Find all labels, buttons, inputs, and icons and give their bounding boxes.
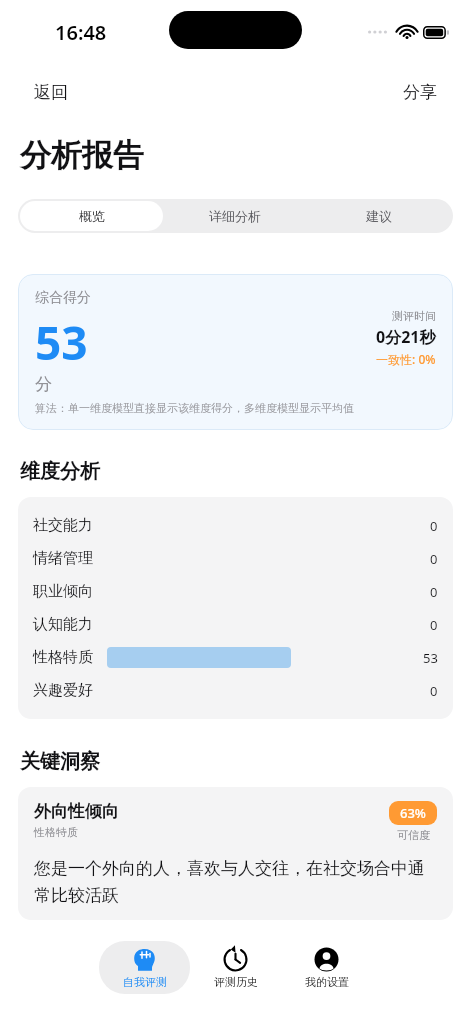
button[interactable]: 自我评测 — [99, 941, 190, 994]
button[interactable]: 详细分析 — [163, 201, 307, 231]
staticText: 一致性: 0% — [376, 351, 436, 367]
staticText: 可信度 — [397, 828, 430, 842]
button[interactable]: 性格特质 — [33, 641, 438, 674]
staticText: 16:48 — [55, 19, 107, 46]
staticText: 评测历史 — [214, 975, 258, 989]
button[interactable]: 概览 — [20, 201, 163, 231]
staticText: 情绪管理 — [33, 549, 93, 568]
staticText: 您是一个外向的人，喜欢与人交往，在社交场合中通常比较活跃 — [34, 858, 437, 906]
button[interactable]: 分享 — [389, 69, 451, 115]
staticText: 概览 — [79, 208, 105, 224]
staticText: 职业倾向 — [33, 582, 93, 601]
staticText: 0 — [430, 550, 438, 568]
staticText: 0分21秒 — [376, 326, 436, 348]
staticText: 性格特质 — [34, 825, 78, 839]
staticText: 0 — [430, 517, 438, 535]
staticText: 关键洞察 — [20, 749, 100, 774]
staticText: 性格特质 — [33, 648, 93, 667]
button[interactable]: 认知能力 — [33, 608, 438, 641]
staticText: 分析报告 — [20, 136, 144, 175]
staticText: 综合得分 — [35, 289, 91, 307]
button[interactable]: 情绪管理 — [33, 542, 438, 575]
staticText: 53 — [35, 311, 88, 374]
button[interactable]: 评测历史 — [190, 941, 281, 994]
staticText: 53 — [423, 649, 438, 667]
button[interactable]: 外向性倾向 — [18, 787, 453, 920]
staticText: 测评时间 — [392, 309, 436, 323]
staticText: 认知能力 — [33, 615, 93, 634]
staticText: 算法：单一维度模型直接显示该维度得分，多维度模型显示平均值 — [35, 401, 356, 415]
other: 自我评测 — [132, 947, 157, 972]
staticText: 维度分析 — [20, 459, 100, 484]
button[interactable]: 返回 — [20, 69, 82, 115]
staticText: 分享 — [403, 82, 437, 103]
staticText: 0 — [430, 682, 438, 700]
button[interactable]: 综合得分 — [18, 274, 453, 430]
button[interactable]: 我的设置 — [281, 941, 372, 994]
staticText: 社交能力 — [33, 516, 93, 535]
staticText: 分 — [35, 374, 52, 395]
staticText: 详细分析 — [209, 208, 261, 224]
button[interactable]: 兴趣爱好 — [33, 674, 438, 707]
staticText: 0 — [430, 583, 438, 601]
other: 评测历史 — [223, 947, 248, 972]
staticText: 兴趣爱好 — [33, 681, 93, 700]
button[interactable]: 建议 — [307, 201, 451, 231]
staticText: 我的设置 — [305, 975, 349, 989]
staticText: 自我评测 — [123, 975, 167, 989]
staticText: 建议 — [366, 208, 392, 224]
staticText: 63% — [400, 804, 426, 822]
staticText: 0 — [430, 616, 438, 634]
button[interactable]: 职业倾向 — [33, 575, 438, 608]
other: 我的设置 — [314, 947, 339, 972]
staticText: 外向性倾向 — [34, 801, 119, 822]
button[interactable]: 社交能力 — [33, 509, 438, 542]
staticText: 返回 — [34, 82, 68, 103]
